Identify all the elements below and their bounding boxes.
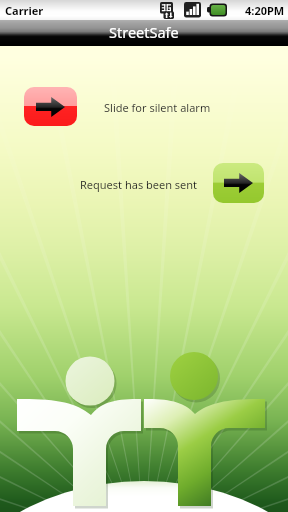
staticText: Request has been sent	[80, 177, 198, 192]
button[interactable]: Send request	[213, 163, 264, 203]
staticText: 4:20PM	[245, 3, 285, 18]
button[interactable]: Silent alarm	[24, 87, 77, 126]
staticText: StreetSafe	[109, 22, 179, 42]
staticText: Carrier	[5, 3, 44, 18]
staticText: Slide for silent alarm	[104, 100, 211, 115]
